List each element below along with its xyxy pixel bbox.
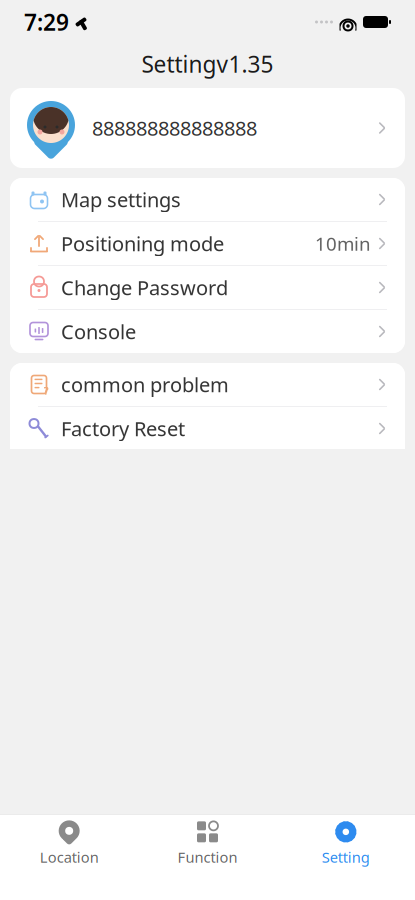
button[interactable]: Factory Reset	[10, 407, 405, 450]
button[interactable]: ?	[10, 363, 405, 406]
button[interactable]: Console	[10, 310, 405, 353]
staticText: Function	[177, 847, 237, 867]
staticText: Location	[40, 847, 99, 867]
button[interactable]: Setting	[277, 812, 415, 871]
button[interactable]: Location	[0, 812, 138, 871]
button[interactable]: Function	[138, 812, 277, 871]
staticText: 888888888888888	[92, 115, 257, 141]
button[interactable]: 888888888888888	[10, 88, 405, 168]
staticText: Change Password	[61, 274, 228, 301]
button[interactable]: Positioning mode	[10, 222, 405, 265]
staticText: 10min	[315, 231, 371, 256]
staticText: Setting	[322, 847, 370, 867]
staticText: common problem	[61, 371, 229, 398]
staticText: Factory Reset	[61, 415, 185, 442]
staticText: Console	[61, 318, 136, 345]
button[interactable]: Map settings	[10, 178, 405, 221]
staticText: ?	[43, 383, 48, 398]
button[interactable]: Change Password	[10, 266, 405, 309]
staticText: Settingv1.35	[141, 49, 273, 79]
staticText: Positioning mode	[61, 230, 224, 257]
staticText: 7:29	[24, 7, 69, 37]
staticText: Map settings	[61, 186, 181, 213]
